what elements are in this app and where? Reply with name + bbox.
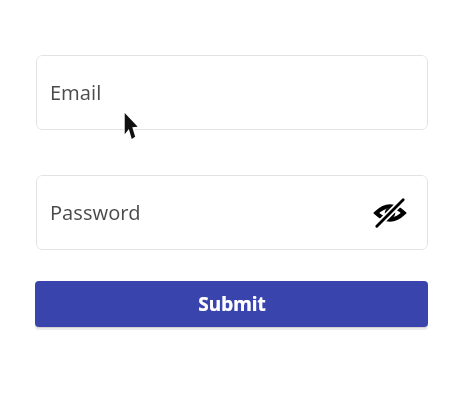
button[interactable]: Show password [372, 195, 408, 231]
button[interactable]: Submit [35, 281, 428, 327]
staticText: Email [50, 79, 102, 106]
button[interactable]: Password [36, 175, 428, 250]
staticText: Password [50, 199, 141, 226]
staticText: Submit [198, 291, 266, 317]
button[interactable]: Email [36, 55, 428, 130]
